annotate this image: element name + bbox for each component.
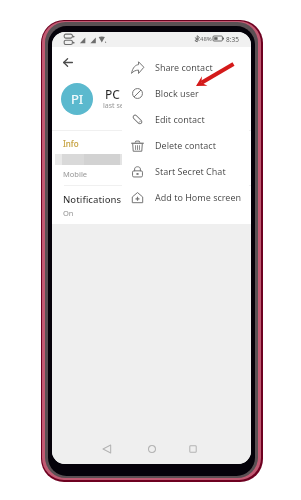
staticText: Start Secret Chat: [155, 165, 226, 177]
button[interactable]: Home: [143, 440, 161, 458]
staticText: Info: [63, 138, 79, 149]
staticText: last seen recently: [103, 101, 161, 111]
staticText: Delete contact: [155, 139, 216, 151]
staticText: 48%: [200, 35, 212, 43]
button[interactable]: Back: [98, 440, 116, 458]
button[interactable]: Share contact: [122, 54, 249, 80]
button[interactable]: Delete contact: [122, 132, 249, 158]
button[interactable]: Add to Home screen: [122, 184, 249, 210]
button[interactable]: Block user: [122, 80, 249, 106]
staticText: 8:35: [226, 35, 239, 44]
staticText: On: [63, 208, 74, 218]
staticText: Notifications: [63, 193, 122, 206]
staticText: Block user: [155, 87, 199, 99]
staticText: Edit contact: [155, 113, 205, 125]
staticText: PI: [71, 90, 84, 108]
button[interactable]: Back: [57, 51, 79, 73]
button[interactable]: Start Secret Chat: [122, 158, 249, 184]
button[interactable]: Recents: [184, 440, 202, 458]
staticText: Add to Home screen: [155, 191, 242, 203]
staticText: Share contact: [155, 61, 213, 73]
staticText: Mobile: [63, 169, 88, 179]
button[interactable]: Edit contact: [122, 106, 249, 132]
staticText: PC: [105, 86, 120, 102]
